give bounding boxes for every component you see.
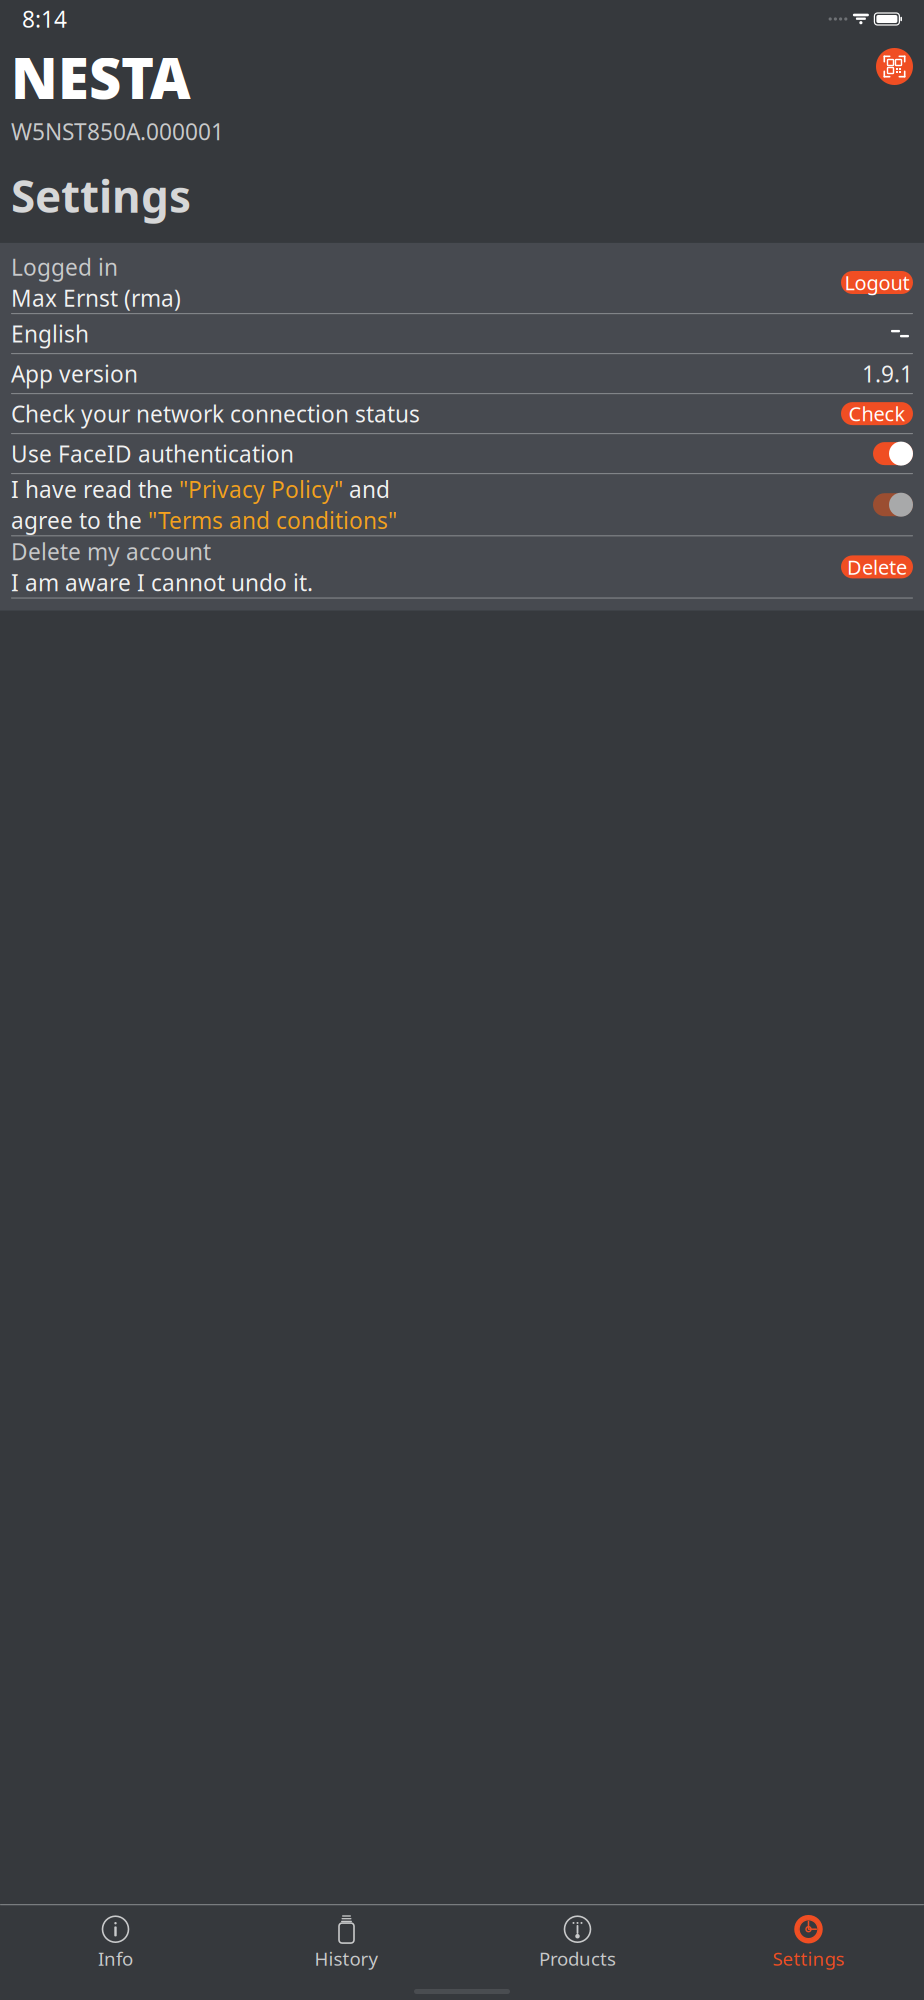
staticText: English — [11, 318, 89, 349]
staticText: 8:14 — [22, 4, 67, 34]
staticText: Check your network connection status — [11, 398, 420, 429]
staticText: Max Ernst (rma) — [11, 283, 181, 313]
staticText: W5NST850A.000001 — [11, 116, 224, 146]
button[interactable]: Logout — [841, 271, 913, 294]
staticText: Delete my account — [11, 536, 211, 566]
staticText: Products — [539, 1946, 616, 1971]
button[interactable]: "Privacy Policy" — [179, 474, 343, 504]
staticText: Settings — [11, 166, 191, 225]
staticText: Logged in — [11, 252, 118, 282]
button[interactable]: History — [231, 1909, 462, 1973]
button[interactable]: Settings — [693, 1909, 924, 1973]
button[interactable]: "Terms and conditions" — [148, 505, 397, 535]
staticText: "Privacy Policy" — [179, 474, 343, 504]
button[interactable]: Change language — [887, 323, 913, 345]
staticText: Logout — [844, 269, 909, 296]
staticText: "Terms and conditions" — [148, 505, 397, 535]
button[interactable]: Info — [0, 1909, 231, 1973]
button[interactable]: Disabled toggle — [873, 493, 913, 517]
staticText: Delete — [847, 554, 907, 580]
staticText: Info — [98, 1946, 133, 1971]
staticText: History — [314, 1946, 378, 1971]
button[interactable]: Check — [841, 402, 913, 425]
staticText: 1.9.1 — [862, 358, 913, 389]
staticText: agree to the — [11, 505, 148, 535]
button[interactable]: Enabled toggle — [873, 442, 913, 466]
staticText: App version — [11, 358, 138, 389]
button[interactable]: Delete — [841, 555, 913, 578]
staticText: NESTA — [11, 40, 191, 114]
button[interactable]: Products — [462, 1909, 693, 1973]
staticText: Use FaceID authentication — [11, 438, 294, 469]
staticText: Settings — [772, 1946, 844, 1971]
staticText: I have read the — [11, 474, 179, 504]
staticText: and — [343, 474, 390, 504]
staticText: Check — [848, 400, 905, 427]
staticText: I am aware I cannot undo it. — [11, 567, 313, 597]
button[interactable]: Scan QR code — [876, 48, 913, 85]
